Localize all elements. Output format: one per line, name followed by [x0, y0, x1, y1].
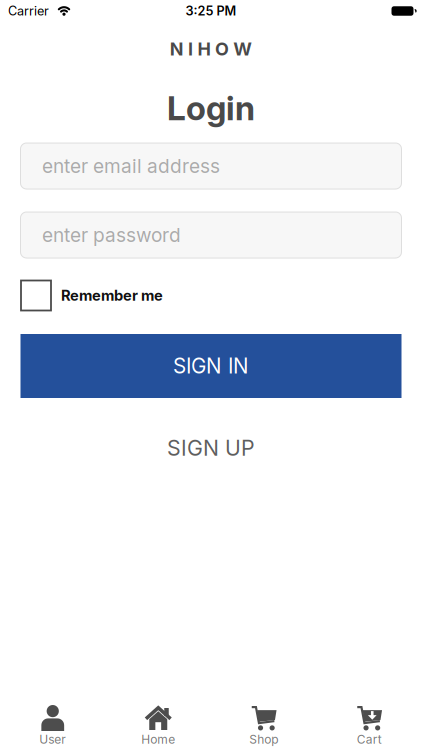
staticText: SIGN UP [167, 435, 255, 461]
staticText: Shop [249, 732, 278, 746]
staticText: W [233, 38, 252, 60]
staticText: Carrier [8, 3, 49, 19]
staticText: enter email address [42, 154, 220, 178]
button[interactable]: SIGN IN [0, 334, 422, 398]
button[interactable]: SIGN UP [167, 434, 255, 462]
staticText: Remember me [61, 287, 163, 304]
button[interactable]: Remember me [0, 280, 422, 310]
staticText: 3:25 PM [185, 3, 236, 19]
staticText: Home [141, 732, 175, 746]
staticText: SIGN IN [173, 353, 249, 378]
button[interactable]: User [0, 695, 105, 750]
staticText: enter password [42, 223, 181, 247]
staticText: N [170, 38, 184, 60]
staticText: O [215, 38, 229, 60]
button[interactable]: Shop [211, 695, 316, 750]
staticText: Login [167, 88, 255, 128]
staticText: I [188, 38, 193, 60]
staticText: User [39, 732, 66, 746]
staticText: H [197, 38, 210, 60]
staticText: Cart [357, 732, 382, 746]
button[interactable]: enter password [0, 212, 422, 258]
button[interactable]: Cart [316, 695, 422, 750]
button[interactable]: Home [105, 695, 211, 750]
button[interactable]: enter email address [0, 143, 422, 189]
